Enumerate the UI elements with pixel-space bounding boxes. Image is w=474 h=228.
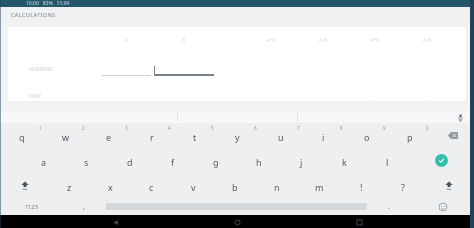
button[interactable]: ? xyxy=(382,173,424,198)
staticText: q xyxy=(19,131,25,143)
staticText: ! xyxy=(360,181,363,193)
button[interactable]: o xyxy=(345,123,388,148)
staticText: o xyxy=(364,131,370,143)
staticText: DATE xyxy=(29,93,42,100)
button[interactable]: Backspace xyxy=(431,123,474,148)
staticText: u xyxy=(278,131,284,143)
staticText: A+B xyxy=(266,37,276,44)
staticText: A*B xyxy=(370,37,380,44)
button[interactable]: h xyxy=(237,148,280,173)
staticText: j xyxy=(300,156,303,168)
staticText: A/B xyxy=(423,37,432,44)
staticText: 5 xyxy=(211,125,214,131)
staticText: w xyxy=(62,131,70,143)
button[interactable]: l xyxy=(366,148,409,173)
staticText: 10:00 83% 11:04 xyxy=(26,0,70,7)
staticText: a xyxy=(41,156,47,168)
staticText: CALCULATIONS xyxy=(11,11,56,18)
button[interactable]: y xyxy=(216,123,259,148)
button[interactable]: v xyxy=(172,173,214,198)
button[interactable]: Shift xyxy=(0,173,49,198)
staticText: ? xyxy=(401,181,405,193)
button[interactable]: j xyxy=(280,148,323,173)
staticText: - xyxy=(427,93,429,100)
button[interactable] xyxy=(154,62,214,76)
button[interactable]: p xyxy=(388,123,431,148)
button[interactable]: q xyxy=(0,123,44,148)
staticText: - xyxy=(374,93,376,100)
staticText: e xyxy=(106,131,112,143)
staticText: l xyxy=(386,156,389,168)
staticText: g xyxy=(213,156,219,168)
staticText: r xyxy=(150,131,154,143)
button[interactable]: c xyxy=(131,173,172,198)
staticText: y xyxy=(235,131,240,143)
staticText: f xyxy=(171,156,175,168)
staticText: x xyxy=(108,181,113,193)
button[interactable]: g xyxy=(194,148,237,173)
button[interactable]: ?123 xyxy=(0,198,62,215)
button[interactable]: d xyxy=(108,148,151,173)
button[interactable]: Back xyxy=(108,217,122,227)
button[interactable]: n xyxy=(256,173,298,198)
staticText: t xyxy=(193,131,197,143)
button[interactable]: ! xyxy=(340,173,382,198)
staticText: m xyxy=(315,181,324,193)
button[interactable]: m xyxy=(298,173,340,198)
staticText: 3 xyxy=(125,125,128,131)
button[interactable]: Recent apps xyxy=(352,217,366,227)
staticText: 7 xyxy=(297,125,300,131)
button[interactable]: z xyxy=(49,173,90,198)
staticText: 0 xyxy=(426,125,429,131)
staticText: 2 xyxy=(82,125,85,131)
staticText: 4 xyxy=(168,125,171,131)
button[interactable]: a xyxy=(22,148,65,173)
staticText: n xyxy=(274,181,280,193)
staticText: i xyxy=(322,131,325,143)
button[interactable]: i xyxy=(302,123,345,148)
staticText: b xyxy=(232,181,238,193)
staticText: d xyxy=(127,156,133,168)
staticText: B xyxy=(182,37,186,44)
button[interactable]: r xyxy=(130,123,173,148)
staticText: 8 xyxy=(340,125,343,131)
button[interactable]: x xyxy=(90,173,131,198)
staticText: c xyxy=(149,181,154,193)
staticText: ?123 xyxy=(25,203,38,211)
staticText: k xyxy=(342,156,347,168)
button[interactable]: s xyxy=(65,148,108,173)
staticText: v xyxy=(191,181,196,193)
button[interactable]: , xyxy=(62,198,106,215)
staticText: , xyxy=(83,202,85,212)
staticText: 6 xyxy=(254,125,257,131)
button[interactable] xyxy=(102,62,151,76)
staticText: NUMBERS xyxy=(29,66,54,73)
staticText: . xyxy=(388,202,390,212)
staticText: z xyxy=(67,181,72,193)
button[interactable]: Enter xyxy=(409,148,474,173)
button[interactable]: u xyxy=(259,123,302,148)
button[interactable]: f xyxy=(151,148,194,173)
button[interactable]: Voice input xyxy=(455,112,465,122)
button[interactable]: Home xyxy=(230,217,244,227)
button[interactable]: Emoji xyxy=(411,198,474,215)
button[interactable]: t xyxy=(173,123,216,148)
staticText: A xyxy=(125,37,129,44)
staticText: s xyxy=(84,156,89,168)
button[interactable]: k xyxy=(323,148,366,173)
staticText: A-B xyxy=(319,37,328,44)
button[interactable]: e xyxy=(87,123,130,148)
staticText: 1 xyxy=(39,125,42,131)
staticText: p xyxy=(407,131,413,143)
staticText: 9 xyxy=(383,125,386,131)
button[interactable]: b xyxy=(214,173,256,198)
staticText: h xyxy=(256,156,262,168)
button[interactable]: Shift xyxy=(424,173,474,198)
button[interactable]: w xyxy=(44,123,87,148)
